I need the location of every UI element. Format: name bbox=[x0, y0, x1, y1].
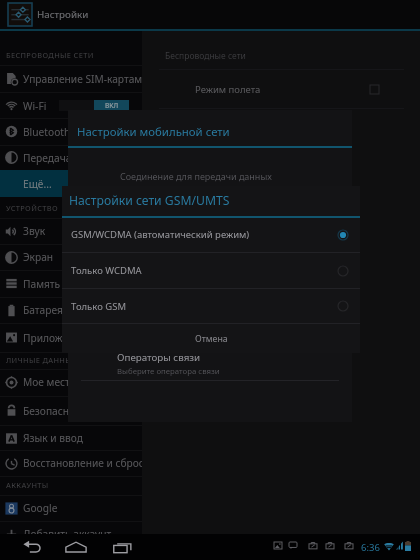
button[interactable]: Звук bbox=[0, 218, 142, 244]
button[interactable]: Back bbox=[21, 534, 43, 560]
staticText: Операторы связи bbox=[117, 351, 201, 364]
button[interactable]: Память bbox=[0, 270, 142, 297]
staticText: Режим полета bbox=[195, 83, 261, 96]
button[interactable]: Безопасность bbox=[0, 396, 142, 425]
button[interactable]: Bluetooth bbox=[0, 118, 142, 145]
staticText: Настройки сети GSM/UMTS bbox=[69, 192, 230, 209]
staticText: Восстановление и сброс bbox=[23, 456, 142, 470]
staticText: Только GSM bbox=[71, 300, 127, 313]
staticText: Настройки bbox=[37, 8, 89, 21]
staticText: Bluetooth bbox=[23, 125, 71, 139]
button[interactable]: Home bbox=[65, 534, 87, 560]
staticText: Wi-Fi bbox=[23, 99, 47, 113]
staticText: Беспроводные сети bbox=[165, 50, 246, 62]
staticText: Безопасность bbox=[23, 404, 91, 418]
button[interactable]: Язык и ввод bbox=[0, 425, 142, 451]
staticText: Память bbox=[23, 277, 61, 291]
staticText: Батарея bbox=[23, 303, 63, 317]
staticText: 6:36 bbox=[361, 541, 380, 554]
staticText: БЕСПРОВОДНЫЕ СЕТИ bbox=[6, 50, 94, 60]
button[interactable]: Добавить аккаунт bbox=[0, 521, 142, 547]
button[interactable]: Восстановление и сброс bbox=[0, 450, 142, 476]
staticText: ВКЛ bbox=[105, 101, 119, 110]
staticText: Выберите оператора связи bbox=[117, 366, 220, 377]
button[interactable]: Управление SIM-картами bbox=[0, 65, 142, 92]
staticText: Добавить аккаунт bbox=[23, 527, 112, 541]
staticText: Мое местоположение bbox=[23, 375, 132, 389]
button[interactable]: Только WCDMA bbox=[62, 253, 360, 288]
staticText: Соединение для передачи данных bbox=[120, 170, 272, 182]
staticText: GSM/WCDMA (автоматический режим) bbox=[71, 228, 250, 241]
button[interactable]: Настройки bbox=[0, 0, 420, 29]
button[interactable]: Только GSM bbox=[62, 289, 360, 323]
staticText: Язык и ввод bbox=[23, 431, 83, 445]
button[interactable]: GSM/WCDMA (автоматический режим) bbox=[62, 217, 360, 252]
button[interactable]: Батарея bbox=[0, 297, 142, 323]
staticText: Передача данных bbox=[23, 151, 112, 165]
staticText: АККАУНТЫ bbox=[6, 480, 49, 490]
button[interactable]: Отмена bbox=[62, 324, 360, 353]
staticText: Звук bbox=[23, 224, 46, 238]
staticText: Google bbox=[23, 501, 58, 515]
staticText: Настройки мобильной сети bbox=[77, 124, 230, 140]
button[interactable]: Wi-Fi bbox=[0, 92, 142, 119]
staticText: Приложения bbox=[23, 331, 87, 345]
button[interactable]: Мое местоположение bbox=[0, 369, 142, 395]
staticText: Отмена bbox=[195, 333, 228, 345]
button[interactable]: Ещё... bbox=[0, 170, 142, 197]
button[interactable]: Операторы связи bbox=[68, 350, 352, 382]
button[interactable]: Экран bbox=[0, 244, 142, 270]
staticText: Ещё... bbox=[23, 177, 52, 191]
button[interactable]: Приложения bbox=[0, 323, 142, 352]
button[interactable]: Передача данных bbox=[0, 145, 142, 170]
button[interactable]: Recent apps bbox=[111, 534, 133, 560]
staticText: УСТРОЙСТВО bbox=[6, 203, 58, 213]
staticText: Экран bbox=[23, 250, 54, 264]
staticText: ЛИЧНЫЕ ДАННЫЕ bbox=[6, 355, 77, 365]
staticText: Только WCDMA bbox=[71, 264, 142, 277]
staticText: Управление SIM-картами bbox=[23, 72, 142, 86]
button[interactable]: Google bbox=[0, 495, 142, 521]
button[interactable]: Режим полета bbox=[142, 70, 420, 108]
